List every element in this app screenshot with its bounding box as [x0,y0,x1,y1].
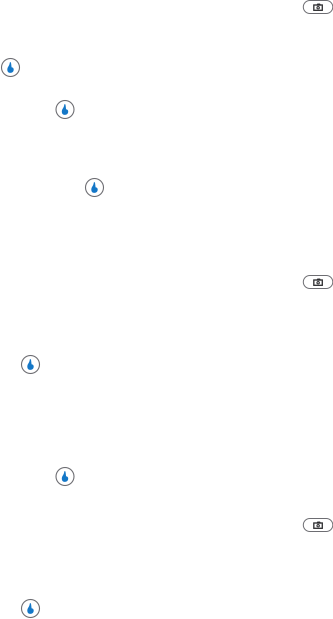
button[interactable]: Streak [56,467,74,485]
button[interactable]: Add photo [303,518,333,531]
button[interactable]: Add photo [303,0,333,13]
button[interactable]: Streak [21,355,39,373]
button[interactable]: Add photo [303,275,333,288]
button[interactable]: Streak [1,58,19,76]
button[interactable]: Streak [21,599,39,617]
button[interactable]: Streak [85,178,103,196]
button[interactable]: Streak [56,100,74,118]
